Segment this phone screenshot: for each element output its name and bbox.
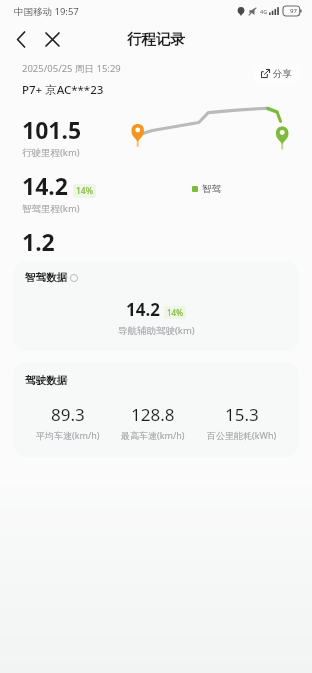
button[interactable]: 智驾数据: [14, 261, 298, 351]
button[interactable]: 关闭: [39, 26, 65, 52]
staticText: 14.2: [22, 170, 68, 201]
staticText: 1.2: [22, 226, 55, 251]
staticText: 14%: [167, 307, 183, 318]
staticText: 4G: [260, 8, 268, 15]
staticText: 智驾数据: [25, 271, 67, 284]
staticText: 智驾: [202, 183, 221, 195]
staticText: 行驶里程(km): [22, 146, 80, 159]
staticText: 128.8: [131, 403, 175, 426]
staticText: 14.2: [126, 298, 160, 321]
staticText: 14%: [76, 185, 93, 197]
staticText: 89.3: [51, 403, 85, 426]
staticText: 97: [290, 7, 297, 15]
staticText: 行程记录: [127, 30, 185, 48]
button[interactable]: 分享: [253, 63, 300, 84]
staticText: 15.3: [225, 403, 259, 426]
button[interactable]: 返回: [9, 27, 33, 51]
staticText: 百公里能耗(kWh): [207, 429, 277, 441]
staticText: 平均车速(km/h): [36, 429, 100, 441]
staticText: 最高车速(km/h): [121, 429, 185, 441]
staticText: 中国移动 19:57: [14, 5, 79, 18]
staticText: 智驾里程(km): [22, 202, 80, 215]
staticText: 导航辅助驾驶(km): [118, 324, 195, 337]
button[interactable]: 驾驶数据: [14, 363, 298, 457]
staticText: 分享: [273, 68, 292, 80]
staticText: 2025/05/25 周日 15:29: [22, 62, 121, 75]
staticText: P7+ 京AC***23: [22, 82, 104, 98]
staticText: 101.5: [22, 114, 82, 145]
staticText: 驾驶数据: [25, 374, 67, 387]
